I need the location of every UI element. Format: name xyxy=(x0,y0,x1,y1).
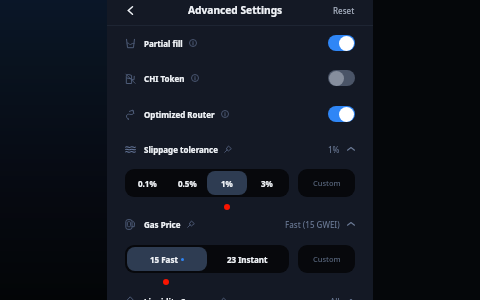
staticText: Liquidity Sources xyxy=(144,296,213,300)
button[interactable]: Gas Price xyxy=(107,211,373,237)
staticText: 15 Fast xyxy=(150,254,178,265)
staticText: Reset xyxy=(333,5,355,16)
staticText: Gas Price xyxy=(144,219,181,230)
button[interactable]: Switch on xyxy=(328,35,355,51)
button[interactable]: Switch on xyxy=(328,106,355,122)
button[interactable]: CHI Token xyxy=(107,63,373,93)
staticText: Fast (15 GWEI) xyxy=(285,219,340,230)
staticText: Slippage tolerance xyxy=(144,144,218,155)
staticText: CHI Token xyxy=(144,73,185,84)
staticText: Custom xyxy=(313,178,341,188)
button[interactable]: 0.1% xyxy=(127,171,167,195)
button[interactable]: Switch off xyxy=(328,70,355,86)
staticText: 0.1% xyxy=(138,178,157,189)
button[interactable]: Optimized Router xyxy=(107,99,373,129)
button[interactable]: Slippage tolerance xyxy=(107,136,373,162)
button[interactable]: 3% xyxy=(247,171,287,195)
button[interactable]: 15 Fast xyxy=(127,247,207,271)
staticText: Advanced Settings xyxy=(188,3,283,17)
button[interactable]: Liquidity Sources xyxy=(107,288,373,300)
staticText: Optimized Router xyxy=(144,109,215,120)
button[interactable]: Reset xyxy=(323,0,373,21)
button[interactable]: 0.5% xyxy=(167,171,207,195)
staticText: Partial fill xyxy=(144,38,183,49)
staticText: 0.5% xyxy=(178,178,197,189)
staticText: Custom xyxy=(313,254,341,264)
button[interactable]: Custom xyxy=(298,169,355,197)
button[interactable]: 1% xyxy=(207,171,247,195)
staticText: All xyxy=(330,296,340,300)
staticText: 23 Instant xyxy=(227,254,268,265)
button[interactable]: Back xyxy=(120,0,140,20)
staticText: 1% xyxy=(221,178,233,189)
button[interactable]: Custom xyxy=(298,245,355,273)
button[interactable]: Partial fill xyxy=(107,28,373,58)
staticText: 1% xyxy=(328,144,340,155)
staticText: 3% xyxy=(261,178,273,189)
button[interactable]: 23 Instant xyxy=(207,247,287,271)
